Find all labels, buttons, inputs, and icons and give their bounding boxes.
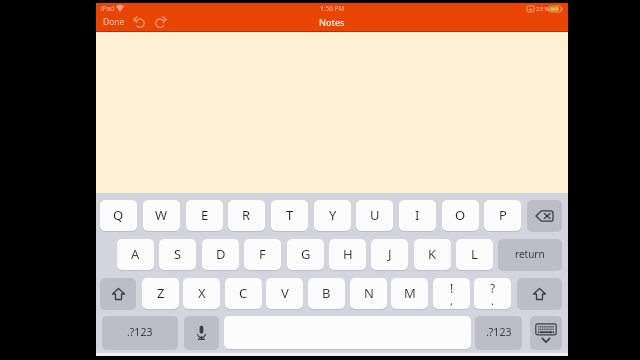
staticText: H — [343, 245, 353, 263]
staticText: D — [216, 245, 226, 263]
staticText: ! — [450, 280, 454, 296]
button[interactable]: Shift — [517, 278, 562, 309]
button[interactable]: Undo — [132, 14, 148, 30]
button[interactable]: P — [484, 200, 521, 231]
staticText: W — [155, 206, 168, 224]
button[interactable]: N — [350, 278, 387, 309]
button[interactable]: H — [329, 239, 366, 270]
staticText: E — [201, 206, 209, 224]
button[interactable]: Redo — [152, 14, 168, 30]
staticText: .?123 — [127, 325, 153, 339]
staticText: . — [491, 293, 494, 308]
button[interactable]: D — [202, 239, 239, 270]
button[interactable]: .?123 — [102, 316, 178, 349]
button[interactable]: B — [308, 278, 345, 309]
button[interactable]: X — [183, 278, 220, 309]
staticText: N — [364, 284, 374, 302]
button[interactable]: F — [244, 239, 281, 270]
button[interactable]: Y — [314, 200, 351, 231]
staticText: Notes — [319, 16, 345, 28]
button[interactable]: K — [414, 239, 451, 270]
button[interactable]: ? — [474, 278, 511, 309]
staticText: Y — [329, 206, 337, 224]
button[interactable]: Dictate — [184, 316, 219, 349]
staticText: C — [239, 284, 248, 302]
staticText: S — [174, 245, 182, 263]
button[interactable]: ! — [433, 278, 470, 309]
staticText: K — [428, 245, 437, 263]
staticText: A — [131, 245, 140, 263]
button[interactable]: E — [186, 200, 223, 231]
staticText: ? — [490, 280, 496, 296]
staticText: V — [281, 284, 289, 302]
staticText: .?123 — [486, 325, 512, 339]
staticText: L — [471, 245, 478, 263]
staticText: T — [286, 206, 294, 224]
button[interactable]: Q — [100, 200, 137, 231]
button[interactable]: U — [356, 200, 393, 231]
staticText: Z — [157, 284, 165, 302]
button[interactable]: return — [498, 239, 562, 270]
button[interactable]: S — [159, 239, 196, 270]
staticText: O — [455, 206, 466, 224]
button[interactable]: G — [287, 239, 324, 270]
button[interactable]: C — [225, 278, 262, 309]
staticText: U — [370, 206, 380, 224]
button[interactable]: .?123 — [475, 316, 522, 349]
button[interactable]: I — [399, 200, 436, 231]
staticText: , — [450, 293, 453, 308]
staticText: M — [404, 284, 416, 302]
staticText: X — [198, 284, 206, 302]
button[interactable]: V — [266, 278, 303, 309]
staticText: iPad — [101, 4, 115, 13]
button[interactable]: L — [456, 239, 493, 270]
staticText: 1:56 PM — [320, 4, 345, 13]
button[interactable]: M — [391, 278, 428, 309]
button[interactable]: Backspace — [527, 200, 562, 231]
staticText: Done — [103, 16, 125, 28]
staticText: return — [515, 247, 545, 261]
staticText: P — [499, 206, 507, 224]
button[interactable]: Shift — [100, 278, 136, 309]
staticText: R — [242, 206, 251, 224]
button[interactable]: W — [143, 200, 180, 231]
staticText: I — [415, 206, 420, 224]
staticText: 23 % — [536, 5, 550, 13]
button[interactable]: J — [371, 239, 408, 270]
staticText: B — [322, 284, 331, 302]
staticText: J — [388, 245, 392, 263]
button[interactable]: Done — [103, 14, 133, 30]
button[interactable]: R — [228, 200, 265, 231]
button[interactable]: Z — [142, 278, 179, 309]
staticText: G — [301, 245, 311, 263]
button[interactable]: Hide keyboard — [530, 316, 562, 349]
button[interactable]: O — [442, 200, 479, 231]
button[interactable]: T — [271, 200, 308, 231]
button[interactable]: A — [117, 239, 154, 270]
staticText: Q — [113, 206, 124, 224]
staticText: F — [259, 245, 266, 263]
